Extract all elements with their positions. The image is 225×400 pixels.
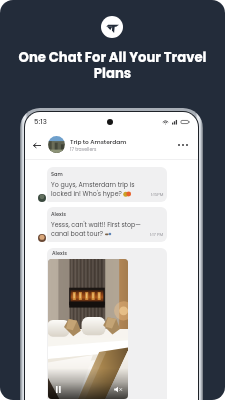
staticText: 5:13 xyxy=(34,117,47,127)
staticText: Alexis xyxy=(51,211,66,218)
button[interactable]: Pause xyxy=(54,385,63,394)
button[interactable]: Back xyxy=(25,130,198,159)
button[interactable]: Back xyxy=(30,138,44,152)
staticText: 1:17 PM xyxy=(150,232,164,238)
staticText: One Chat For All Your Travel Plans xyxy=(18,48,207,82)
staticText: 1:15PM xyxy=(151,192,164,198)
staticText: canal boat tour? xyxy=(51,229,105,238)
button[interactable]: Group avatar xyxy=(48,136,65,153)
staticText: Trip to Amsterdam xyxy=(70,138,127,146)
staticText: Sam xyxy=(51,171,63,178)
button[interactable]: Unmute xyxy=(113,384,123,394)
button[interactable]: Alexis xyxy=(47,207,167,242)
button[interactable]: More options xyxy=(174,136,192,154)
staticText: Yesss, can't wait!! First stop— xyxy=(51,220,141,229)
staticText: Yo guys, Amsterdam trip is xyxy=(51,180,135,189)
staticText: locked in! Who's hype? xyxy=(51,189,124,198)
button[interactable]: App logo xyxy=(101,16,123,38)
staticText: 17 travellers xyxy=(70,146,97,152)
staticText: Alexis xyxy=(52,250,67,257)
button[interactable]: Alexis xyxy=(47,248,167,399)
button[interactable]: Sam xyxy=(47,167,167,202)
